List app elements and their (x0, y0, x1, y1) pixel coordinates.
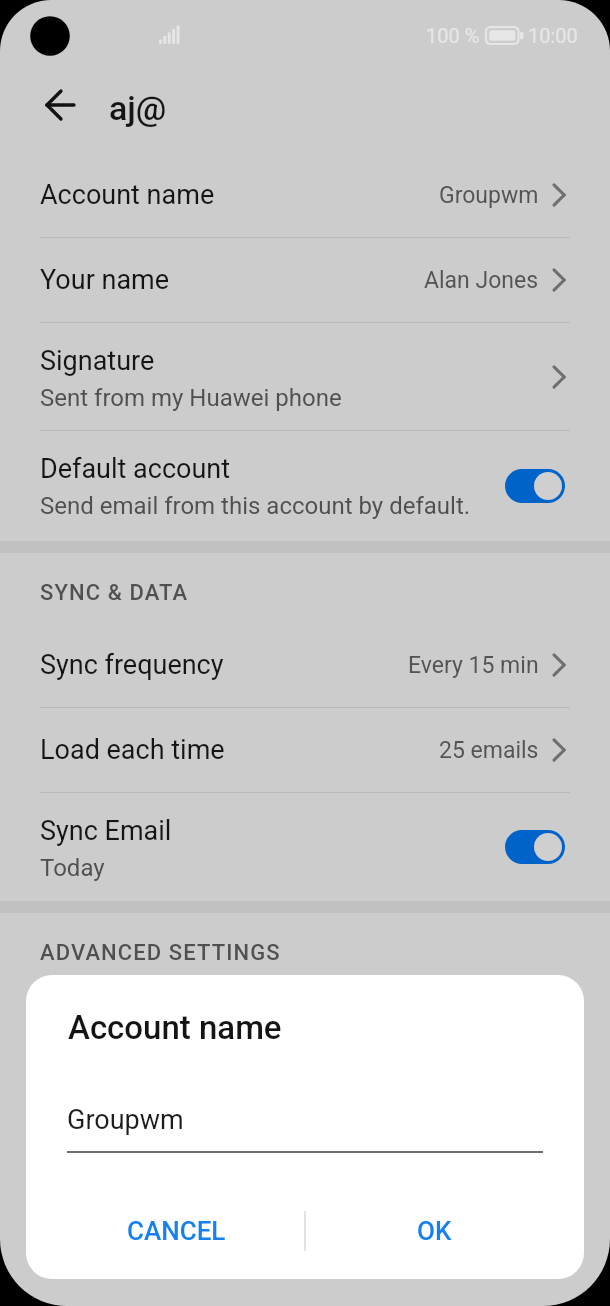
button[interactable]: Signature (0, 323, 610, 430)
staticText: aj@ (109, 88, 167, 128)
button[interactable]: OK (332, 1197, 537, 1265)
button[interactable]: Outgoing settings (0, 981, 610, 1088)
staticText: Alan Jones (424, 267, 539, 294)
staticText: Sync Email (40, 815, 172, 847)
button[interactable]: Default account (0, 431, 610, 541)
staticText: Default account (40, 453, 231, 485)
button[interactable]: Load each time (0, 708, 610, 792)
staticText: Account name (68, 1008, 282, 1047)
button[interactable]: CANCEL (74, 1197, 279, 1265)
staticText: Groupwm (67, 1104, 184, 1136)
staticText: OK (417, 1216, 452, 1246)
staticText: Account name (40, 179, 215, 211)
staticText: Today (40, 854, 105, 882)
button[interactable]: Your name (0, 238, 610, 322)
staticText: 100 % (426, 24, 480, 47)
button[interactable]: Sync frequency (0, 623, 610, 707)
staticText: CANCEL (127, 1216, 226, 1246)
button[interactable]: Account name (0, 153, 610, 237)
button[interactable]: Toggle switch, on (505, 830, 565, 864)
staticText: Every 15 min (408, 652, 539, 679)
staticText: 25 emails (439, 737, 539, 764)
staticText: SYNC & DATA (40, 580, 189, 606)
button[interactable]: Toggle switch, on (505, 469, 565, 503)
staticText: ADVANCED SETTINGS (40, 940, 281, 966)
staticText: Outgoing settings (40, 1003, 253, 1035)
button[interactable]: Sync Email (0, 793, 610, 901)
staticText: Sync frequency (40, 649, 224, 681)
staticText: Sent from my Huawei phone (40, 384, 342, 412)
staticText: Signature (40, 345, 155, 377)
staticText: 10:00 (528, 24, 578, 47)
staticText: Your name (40, 264, 170, 296)
staticText: Send email from this account by default. (40, 492, 471, 520)
button[interactable]: Back (35, 77, 91, 133)
staticText: Groupwm (439, 182, 539, 209)
staticText: Load each time (40, 734, 225, 766)
